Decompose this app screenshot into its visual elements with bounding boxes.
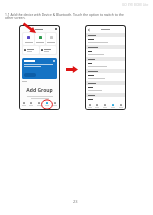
button[interactable] <box>86 49 125 57</box>
button[interactable] <box>86 85 125 93</box>
button[interactable] <box>35 33 45 45</box>
button[interactable] <box>40 46 56 54</box>
button[interactable]: Tab 5 <box>51 100 59 109</box>
button[interactable]: Tab 2 <box>27 100 35 109</box>
button[interactable]: Tab 5 <box>117 105 125 109</box>
button[interactable] <box>86 73 125 81</box>
button[interactable]: Tab 2 <box>93 105 101 109</box>
button[interactable]: Learn more <box>22 58 57 79</box>
button[interactable] <box>23 46 39 54</box>
staticText: GO EYE BOXE Lite <box>122 3 149 7</box>
button[interactable]: Tab 3 <box>101 105 109 109</box>
button[interactable]: Tab 4 <box>109 105 117 109</box>
button[interactable]: Tab 1 <box>86 105 93 109</box>
staticText: 23 <box>73 199 78 204</box>
button[interactable] <box>46 33 56 45</box>
button[interactable] <box>86 97 125 105</box>
staticText: 1.1 Add the device with Device & Bluetoo… <box>5 12 127 20</box>
button[interactable]: Tab 4 <box>43 100 51 109</box>
button[interactable]: Tab 3 <box>35 100 43 109</box>
button[interactable]: Back <box>88 29 90 31</box>
button[interactable]: Tab 1 <box>20 100 27 109</box>
button[interactable] <box>86 37 125 45</box>
staticText: Add Group <box>20 87 59 94</box>
button[interactable] <box>86 61 125 69</box>
button[interactable]: Learn more <box>24 73 36 77</box>
button[interactable] <box>23 33 34 45</box>
